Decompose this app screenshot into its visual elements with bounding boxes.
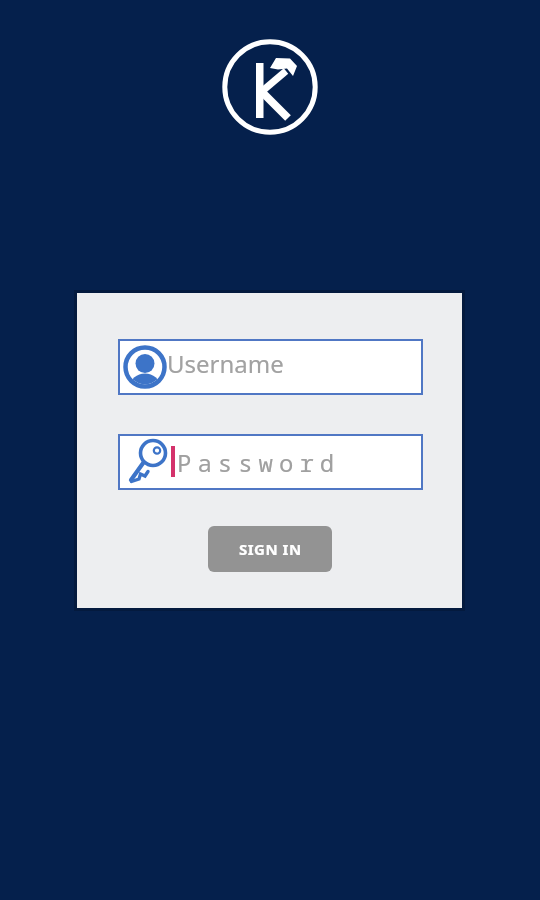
staticText: SIGN IN	[239, 539, 302, 559]
button[interactable]: Password	[118, 434, 423, 490]
staticText: Username	[167, 347, 284, 380]
staticText: Password	[177, 446, 341, 479]
button[interactable]: Username	[118, 339, 423, 395]
button[interactable]: SIGN IN	[208, 526, 332, 572]
